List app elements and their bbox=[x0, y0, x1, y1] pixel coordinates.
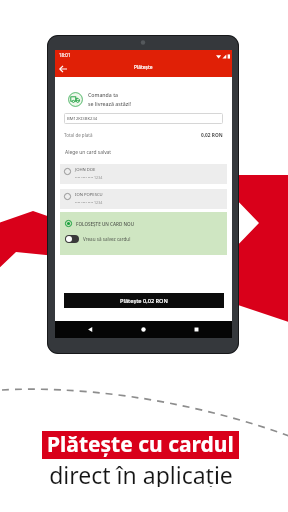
button[interactable]: Plătește 0,02 RON bbox=[64, 293, 224, 308]
staticText: Alege un card salvat bbox=[65, 149, 112, 156]
staticText: ION POPESCU bbox=[75, 192, 103, 198]
staticText: Vreau să salvez cardul bbox=[83, 236, 131, 242]
staticText: se livrează astăzi! bbox=[88, 100, 131, 107]
button[interactable]: FOLOSEȘTE UN CARD NOU bbox=[65, 220, 135, 227]
staticText: Total de plată bbox=[64, 132, 93, 138]
staticText: Plătește bbox=[134, 64, 153, 71]
staticText: •••• •••• •••• 1234 bbox=[75, 200, 103, 205]
button[interactable]: Home bbox=[138, 324, 149, 335]
button[interactable]: Vreau să salvez cardul bbox=[65, 235, 131, 243]
staticText: 0,02 RON bbox=[201, 132, 223, 139]
staticText: FOLOSEȘTE UN CARD NOU bbox=[76, 221, 135, 227]
button[interactable]: JOHN DOE bbox=[60, 164, 227, 184]
staticText: 18:01 bbox=[59, 52, 71, 58]
staticText: JOHN DOE bbox=[75, 167, 96, 173]
staticText: Plătește cu cardul bbox=[47, 430, 234, 458]
button[interactable]: Back bbox=[58, 64, 69, 74]
staticText: BM12KI3BK234 bbox=[67, 116, 98, 122]
staticText: Plătește 0,02 RON bbox=[120, 297, 168, 305]
staticText: direct în aplicație bbox=[49, 459, 233, 487]
button[interactable]: Recent apps bbox=[191, 324, 202, 335]
staticText: Comanda ta bbox=[88, 91, 119, 98]
button[interactable]: Back bbox=[85, 324, 96, 335]
staticText: •••• •••• •••• 1234 bbox=[75, 175, 103, 180]
button[interactable]: ION POPESCU bbox=[60, 189, 227, 209]
